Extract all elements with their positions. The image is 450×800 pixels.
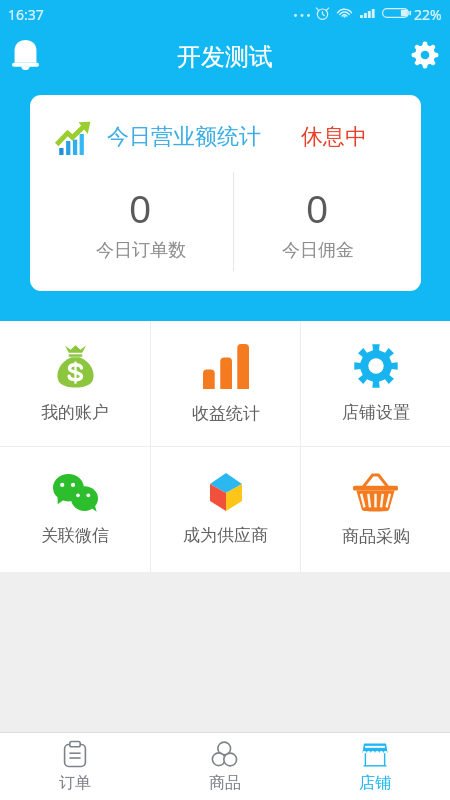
staticText: 0 [129, 181, 152, 234]
button[interactable]: 商品 [150, 733, 300, 800]
staticText: 0 [306, 181, 329, 234]
button[interactable]: 收益统计 [151, 321, 300, 446]
button[interactable]: 成为供应商 [151, 447, 300, 572]
staticText: 商品采购 [342, 526, 410, 547]
staticText: 店铺 [359, 773, 391, 793]
button[interactable]: 商品采购 [301, 447, 450, 572]
button[interactable]: 店铺设置 [301, 321, 450, 446]
staticText: 16:37 [8, 5, 44, 24]
staticText: 关联微信 [41, 525, 109, 546]
staticText: 我的账户 [41, 402, 109, 423]
staticText: 收益统计 [192, 403, 260, 424]
button[interactable]: 订单 [0, 733, 150, 800]
staticText: 今日营业额统计 [107, 123, 261, 151]
staticText: 成为供应商 [183, 525, 268, 546]
staticText: 今日佣金 [282, 239, 354, 262]
staticText: 休息中 [301, 123, 367, 151]
staticText: 商品 [209, 773, 241, 793]
button[interactable]: 我的账户 [0, 321, 150, 446]
staticText: 订单 [59, 773, 91, 793]
button[interactable]: Notifications [0, 28, 50, 82]
staticText: 开发测试 [177, 42, 273, 72]
staticText: 今日订单数 [96, 239, 186, 262]
button[interactable]: 关联微信 [0, 447, 150, 572]
button[interactable]: 店铺 [300, 733, 450, 800]
staticText: 22% [414, 5, 442, 24]
staticText: 店铺设置 [342, 402, 410, 423]
button[interactable]: Settings [400, 28, 450, 82]
